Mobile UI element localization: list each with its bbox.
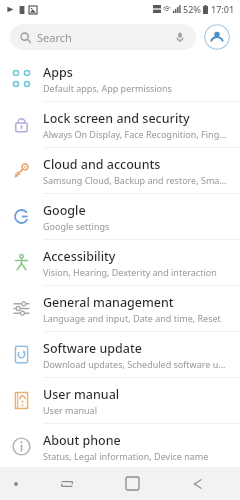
staticText: Google — [43, 202, 86, 219]
staticText: Always On Display, Face Recognition, Fin… — [43, 128, 228, 140]
button[interactable]: Cloud and accounts — [0, 148, 240, 193]
staticText: Accessibility — [43, 248, 116, 265]
button[interactable]: Apps — [0, 56, 240, 101]
staticText: Default apps, App permissions — [43, 82, 172, 94]
button[interactable]: Lock screen and security — [0, 102, 240, 147]
button[interactable]: Accessibility — [0, 240, 240, 285]
staticText: Vision, Hearing, Dexterity and interacti… — [43, 266, 217, 278]
button[interactable]: User manual — [0, 378, 240, 423]
button[interactable]: General management — [0, 286, 240, 331]
button[interactable]: Account — [204, 24, 230, 50]
button[interactable]: Google — [0, 194, 240, 239]
button[interactable]: Back — [165, 467, 230, 500]
staticText: Apps — [43, 64, 73, 81]
staticText: General management — [43, 294, 174, 311]
button[interactable]: Home — [100, 467, 165, 500]
staticText: Cloud and accounts — [43, 156, 161, 173]
staticText: Status, Legal information, Device name — [43, 450, 209, 462]
button[interactable]: Recents — [34, 467, 100, 500]
staticText: 17:01 — [211, 3, 235, 15]
button[interactable]: About phone — [0, 424, 240, 469]
button[interactable]: Search — [10, 24, 196, 50]
staticText: About phone — [43, 432, 121, 449]
staticText: User manual — [43, 404, 97, 416]
button[interactable]: Keyboard indicator — [9, 477, 23, 491]
staticText: Lock screen and security — [43, 110, 190, 127]
staticText: Language and input, Date and time, Reset — [43, 312, 221, 324]
staticText: Download updates, Scheduled software up… — [43, 358, 228, 370]
button[interactable]: Software update — [0, 332, 240, 377]
staticText: 52% — [183, 3, 201, 15]
staticText: Samsung Cloud, Backup and restore, Smart… — [43, 174, 228, 186]
button[interactable]: Voice search — [174, 31, 186, 43]
staticText: Search — [37, 30, 72, 45]
staticText: Software update — [43, 340, 142, 357]
staticText: Google settings — [43, 220, 110, 232]
staticText: User manual — [43, 386, 120, 403]
